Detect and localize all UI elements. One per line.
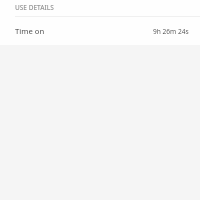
staticText: 9h 26m 24s	[153, 27, 189, 36]
staticText: Time on	[15, 26, 45, 36]
staticText: USE DETAILS	[15, 3, 54, 12]
button[interactable]: Time on, 9h 26m 24s	[0, 17, 200, 45]
